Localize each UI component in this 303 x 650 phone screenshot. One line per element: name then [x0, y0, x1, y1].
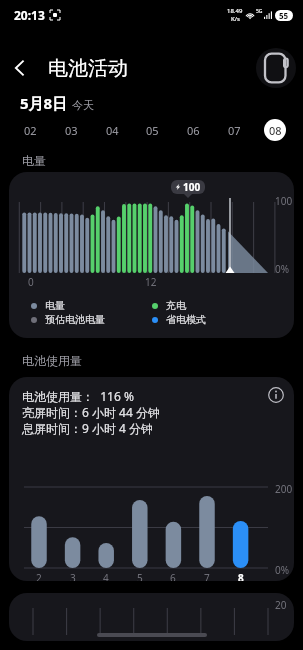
staticText: 预估电池电量 [45, 313, 105, 326]
staticText: 06 [187, 123, 200, 138]
button[interactable]: 电池使用量： 116 % [9, 377, 294, 581]
staticText: 55 [279, 10, 289, 21]
staticText: 充电 [166, 299, 186, 312]
staticText: 05 [146, 123, 159, 138]
staticText: 18.49 [227, 7, 243, 15]
button[interactable]: Back [0, 48, 40, 88]
staticText: 03 [65, 123, 78, 138]
staticText: 亮屏时间：6 小时 44 分钟 [22, 404, 160, 420]
staticText: K/s [231, 15, 240, 23]
staticText: 02 [24, 123, 37, 138]
staticText: 20:13 [14, 7, 45, 23]
button[interactable]: 07 [223, 119, 245, 141]
button[interactable]: 08 [264, 119, 286, 141]
staticText: 4 [103, 571, 109, 581]
staticText: 电池使用量 [22, 353, 82, 368]
button[interactable]: 省电模式 [152, 313, 206, 326]
button[interactable]: 20 [9, 593, 294, 641]
staticText: 100 [183, 180, 201, 194]
button[interactable]: 04 [101, 119, 123, 141]
button[interactable]: Device battery [256, 48, 296, 88]
staticText: 08 [269, 123, 282, 138]
button[interactable]: 电量 [31, 299, 65, 312]
staticText: 8 [238, 571, 244, 581]
button[interactable]: Info [262, 381, 290, 409]
button[interactable]: 预估电池电量 [31, 313, 105, 326]
staticText: 7 [204, 571, 210, 581]
staticText: 20 [275, 598, 287, 612]
staticText: 6 [170, 571, 176, 581]
staticText: 省电模式 [166, 313, 206, 326]
staticText: 0 [28, 275, 34, 289]
staticText: 3 [70, 571, 76, 581]
staticText: 0% [275, 262, 290, 276]
staticText: 5G [256, 8, 263, 15]
staticText: 07 [228, 123, 241, 138]
staticText: 100 [275, 194, 293, 208]
staticText: 电量 [45, 299, 65, 312]
staticText: 电量 [22, 153, 46, 168]
button[interactable]: 03 [60, 119, 82, 141]
button[interactable]: 100 [9, 172, 294, 338]
staticText: 0% [275, 563, 290, 577]
staticText: 电池活动 [48, 56, 128, 81]
button[interactable]: 05 [141, 119, 163, 141]
staticText: 2 [36, 571, 42, 581]
button[interactable]: 02 [19, 119, 41, 141]
staticText: 04 [106, 123, 119, 138]
staticText: 200 [275, 482, 293, 496]
staticText: 今天 [72, 98, 94, 112]
staticText: 12 [145, 275, 157, 289]
staticText: 电池使用量： 116 % [22, 388, 134, 404]
staticText: 5月8日 [20, 93, 68, 113]
staticText: 5 [137, 571, 143, 581]
staticText: 息屏时间：9 小时 4 分钟 [22, 420, 154, 436]
button[interactable]: 充电 [152, 299, 186, 312]
button[interactable]: 06 [182, 119, 204, 141]
